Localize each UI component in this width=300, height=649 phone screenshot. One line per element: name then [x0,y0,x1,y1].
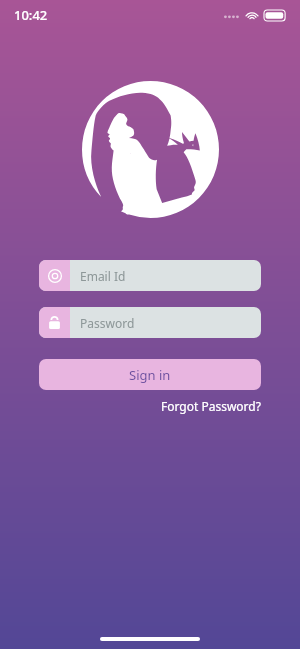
button[interactable]: Forgot Password? [161,398,261,414]
staticText: Email Id [80,268,126,284]
button[interactable]: Email Id [39,260,261,291]
button[interactable]: Sign in [39,359,261,390]
staticText: Password [80,315,135,331]
button[interactable]: Password [39,307,261,338]
staticText: 10:42 [14,6,48,24]
staticText: Sign in [129,366,171,384]
staticText: Forgot Password? [161,398,261,414]
